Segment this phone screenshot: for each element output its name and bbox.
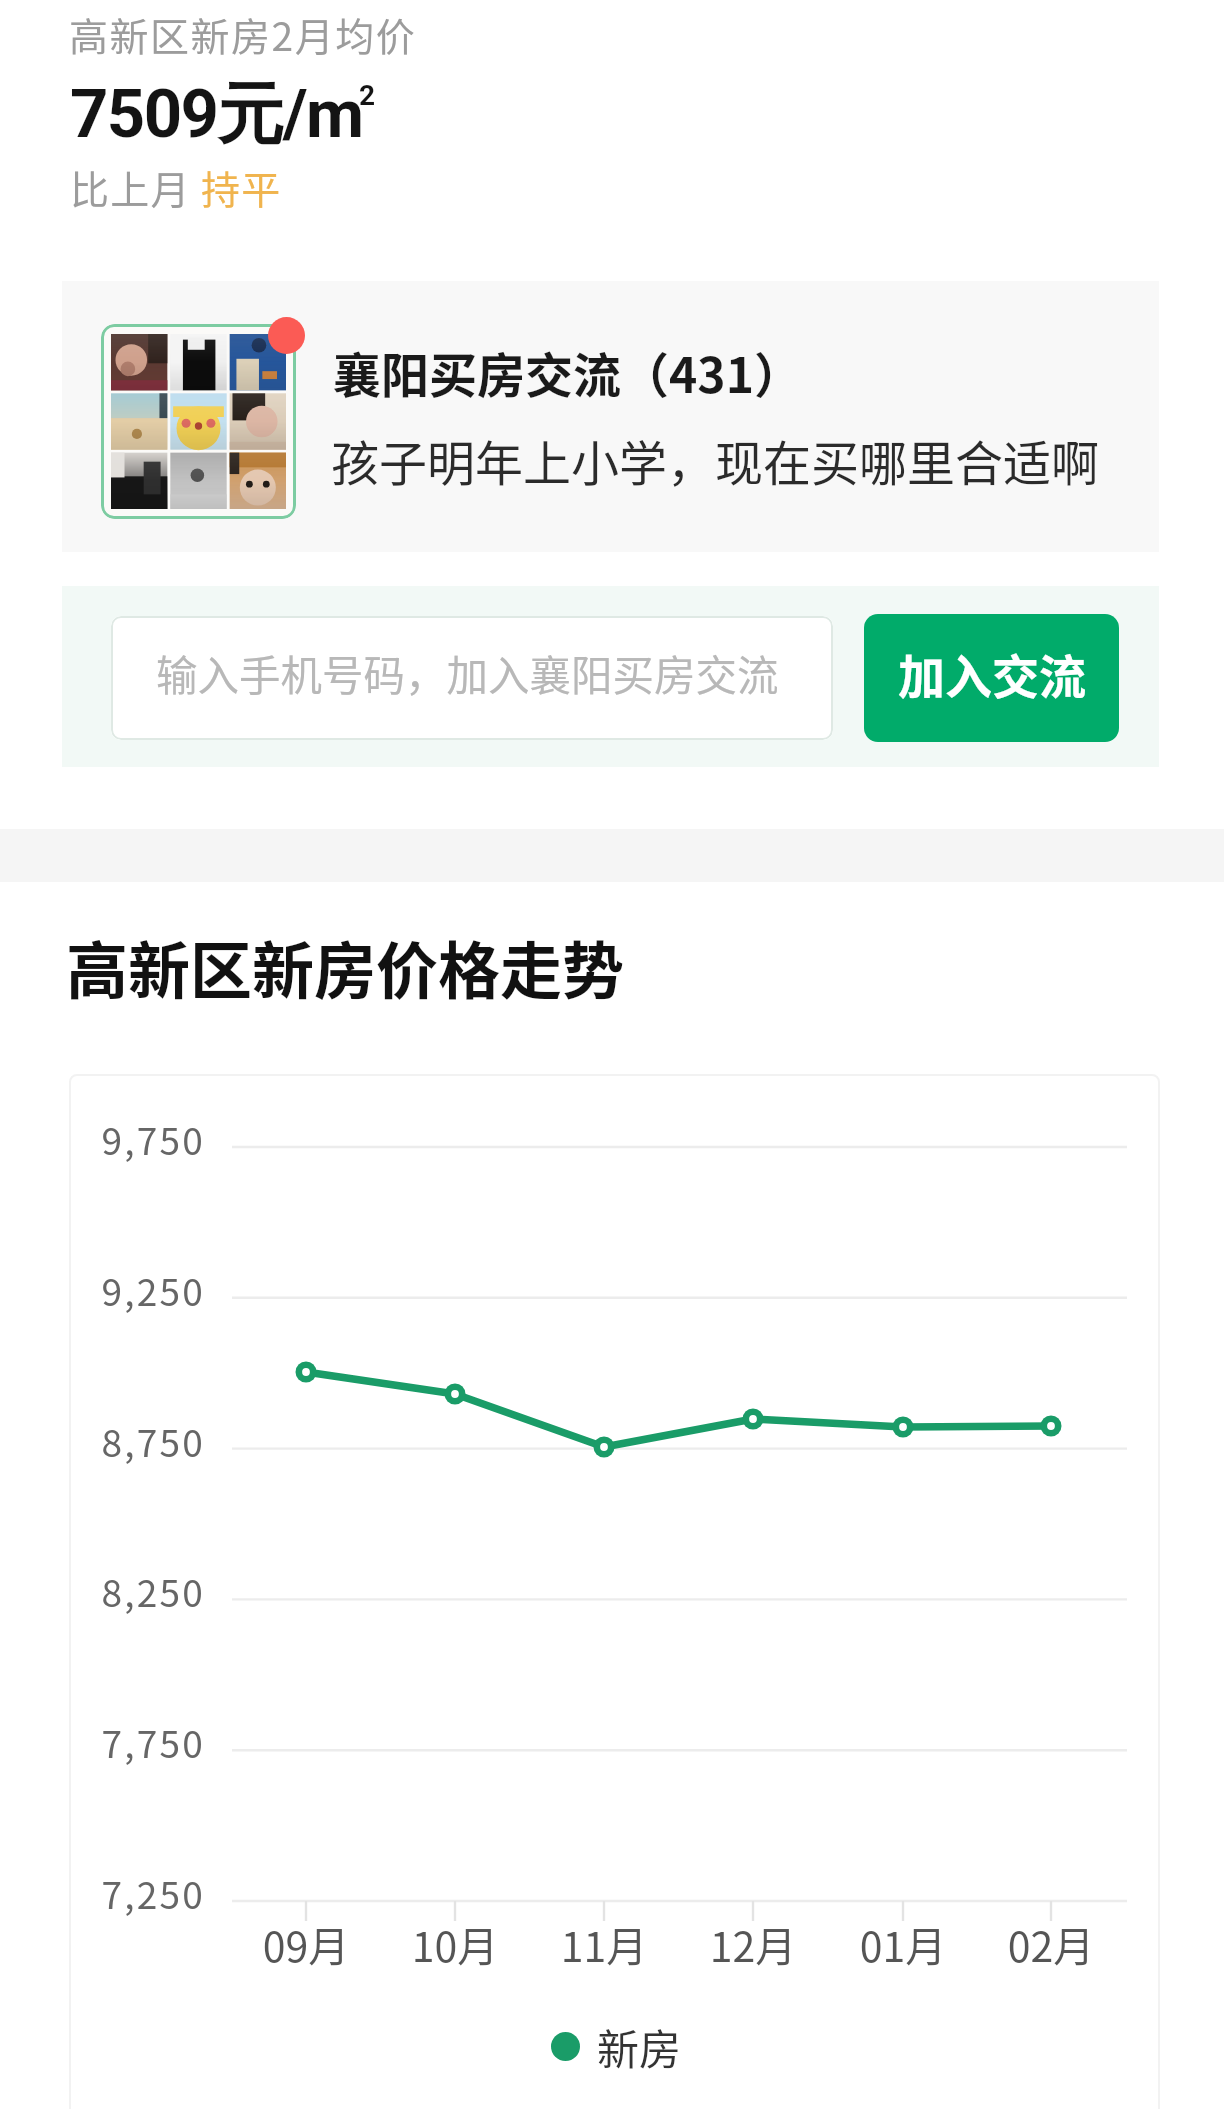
staticText: 襄阳买房交流（431） [333, 337, 802, 407]
staticText: 高新区新房2月均价 [69, 6, 417, 62]
staticText: 2 [359, 79, 376, 112]
staticText: 孩子明年上小学，现在买哪里合适啊 [331, 425, 1100, 495]
staticText: 加入交流 [898, 639, 1086, 707]
staticText: 10月 [375, 1914, 535, 1973]
staticText: 02月 [971, 1914, 1131, 1973]
staticText: 7,250 [85, 1866, 205, 1920]
button[interactable]: 输入手机号码 [111, 616, 833, 740]
staticText: 7,750 [85, 1715, 205, 1769]
staticText: 11月 [524, 1914, 684, 1973]
staticText: 8,750 [85, 1414, 205, 1468]
staticText: 持平 [201, 159, 282, 215]
staticText: 01月 [823, 1914, 983, 1973]
button[interactable]: 襄阳买房交流群组 [62, 281, 1159, 552]
staticText: 8,250 [85, 1564, 205, 1618]
button[interactable]: 新房 [551, 2016, 682, 2077]
staticText: 输入手机号码，加入襄阳买房交流 [156, 643, 779, 703]
staticText: 12月 [673, 1914, 833, 1973]
staticText: 比上月 [70, 159, 201, 215]
staticText: 新房 [597, 2016, 682, 2077]
button[interactable]: 加入交流 [864, 614, 1119, 742]
staticText: 7509元/m [70, 72, 363, 156]
staticText: 9,250 [85, 1263, 205, 1317]
staticText: 高新区新房价格走势 [66, 922, 625, 1012]
staticText: 9,750 [85, 1112, 205, 1166]
staticText: 09月 [226, 1914, 386, 1973]
